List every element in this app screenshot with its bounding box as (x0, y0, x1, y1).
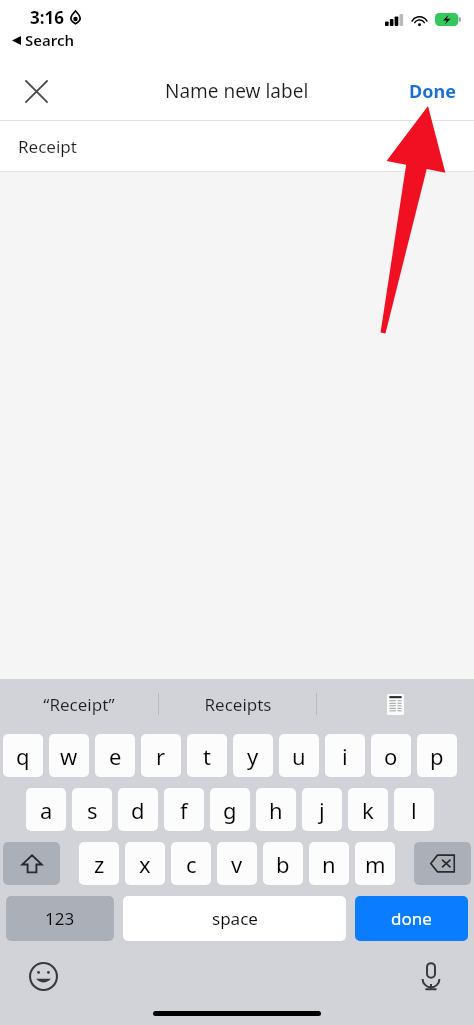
staticText: f (180, 795, 188, 825)
button[interactable]: b (263, 842, 303, 885)
button[interactable]: d (118, 788, 158, 831)
staticText: o (384, 741, 398, 771)
button[interactable]: x (125, 842, 165, 885)
button[interactable]: t (187, 734, 227, 777)
button[interactable]: f (164, 788, 204, 831)
staticText: d (131, 795, 145, 825)
staticText: q (16, 741, 30, 771)
button[interactable]: m (355, 842, 395, 885)
button[interactable]: u (279, 734, 319, 777)
button[interactable]: h (256, 788, 296, 831)
staticText: b (276, 849, 290, 879)
button[interactable]: z (79, 842, 119, 885)
button[interactable]: w (49, 734, 89, 777)
button[interactable]: Receipts (159, 679, 316, 729)
button[interactable]: Backspace (414, 842, 471, 885)
staticText: 3:16 (30, 6, 64, 29)
button[interactable]: o (371, 734, 411, 777)
button[interactable]: s (72, 788, 112, 831)
staticText: j (319, 795, 325, 825)
staticText: “Receipt” (43, 693, 115, 716)
staticText: g (223, 795, 237, 825)
button[interactable]: e (95, 734, 135, 777)
staticText: i (342, 741, 348, 771)
button[interactable]: v (217, 842, 257, 885)
button[interactable]: Receipt (0, 121, 474, 171)
button[interactable]: l (394, 788, 434, 831)
button[interactable]: c (171, 842, 211, 885)
button[interactable]: Close (14, 69, 58, 113)
button[interactable]: Receipt emoji suggestion (317, 679, 474, 729)
staticText: y (247, 741, 259, 771)
staticText: l (411, 795, 417, 825)
staticText: Name new label (165, 78, 309, 104)
staticText: h (269, 795, 283, 825)
staticText: Receipt (18, 135, 77, 158)
button[interactable]: g (210, 788, 250, 831)
staticText: k (362, 795, 374, 825)
staticText: Done (409, 79, 456, 104)
button[interactable]: Done (401, 71, 464, 112)
button[interactable]: j (302, 788, 342, 831)
staticText: w (60, 741, 78, 771)
staticText: Search (25, 30, 75, 50)
staticText: m (365, 849, 386, 879)
button[interactable]: Dictation (410, 955, 452, 997)
button[interactable]: “Receipt” (0, 679, 158, 729)
button[interactable]: i (325, 734, 365, 777)
button[interactable]: n (309, 842, 349, 885)
staticText: p (430, 741, 444, 771)
button[interactable]: q (3, 734, 43, 777)
button[interactable]: done (355, 896, 468, 941)
button[interactable]: space (123, 896, 346, 941)
staticText: u (292, 741, 306, 771)
staticText: r (156, 741, 166, 771)
staticText: v (231, 849, 243, 879)
staticText: z (94, 849, 105, 879)
button[interactable]: r (141, 734, 181, 777)
button[interactable]: p (417, 734, 457, 777)
staticText: done (391, 907, 432, 930)
button[interactable]: 123 (6, 896, 114, 941)
button[interactable]: Emoji (22, 955, 64, 997)
staticText: x (139, 849, 151, 879)
button[interactable]: y (233, 734, 273, 777)
button[interactable]: k (348, 788, 388, 831)
staticText: c (186, 849, 197, 879)
staticText: s (87, 795, 98, 825)
staticText: t (203, 741, 211, 771)
button[interactable]: Shift (3, 842, 60, 885)
staticText: Receipts (204, 693, 272, 716)
staticText: n (322, 849, 336, 879)
staticText: e (109, 741, 122, 771)
staticText: 123 (45, 907, 75, 930)
staticText: a (40, 795, 53, 825)
button[interactable]: a (26, 788, 66, 831)
staticText: space (212, 907, 258, 930)
